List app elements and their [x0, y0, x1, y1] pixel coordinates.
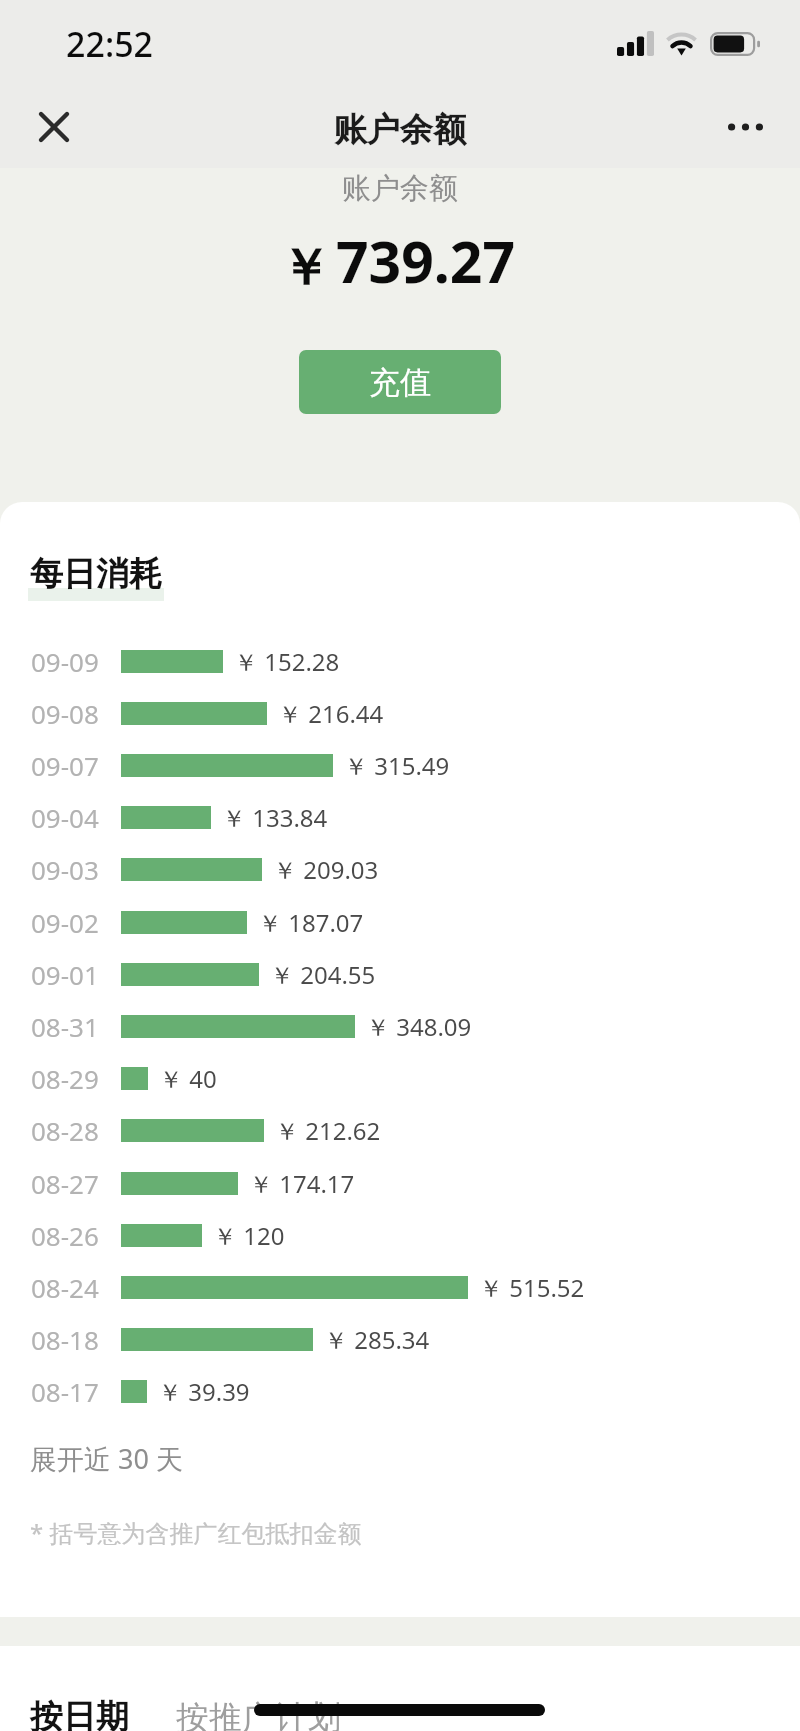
button[interactable]: 09-03	[0, 843, 800, 895]
staticText: 每日消耗	[30, 553, 162, 595]
staticText: ￥ 39.39	[158, 1375, 250, 1408]
staticText: * 括号意为含推广红包抵扣金额	[30, 1516, 362, 1549]
button[interactable]: 08-24	[0, 1261, 800, 1313]
button[interactable]: 09-01	[0, 948, 800, 1000]
button[interactable]: 按日期	[30, 1696, 129, 1731]
button[interactable]: 09-04	[0, 791, 800, 843]
staticText: 08-18	[31, 1322, 121, 1357]
staticText: ￥ 216.44	[278, 697, 384, 730]
staticText: 08-26	[31, 1218, 121, 1253]
button[interactable]: Close	[23, 96, 85, 158]
staticText: ￥ 133.84	[222, 801, 328, 834]
button[interactable]: 09-02	[0, 896, 800, 948]
staticText: 09-04	[31, 800, 121, 835]
staticText: 按推广计划	[176, 1697, 341, 1731]
staticText: 09-07	[31, 748, 121, 783]
staticText: ￥ 120	[213, 1219, 285, 1252]
button[interactable]: 09-08	[0, 687, 800, 739]
staticText: ￥ 285.34	[324, 1323, 430, 1356]
staticText: ￥	[280, 237, 330, 300]
button[interactable]: 08-28	[0, 1104, 800, 1156]
button[interactable]: 08-18	[0, 1313, 800, 1365]
button[interactable]: 充值	[299, 350, 501, 414]
staticText: 739.27	[336, 222, 516, 300]
button[interactable]: 09-09	[0, 635, 800, 687]
button[interactable]: 08-29	[0, 1052, 800, 1104]
staticText: 08-28	[31, 1113, 121, 1148]
staticText: ￥ 174.17	[249, 1167, 355, 1200]
button[interactable]: 按推广计划	[176, 1697, 341, 1731]
staticText: ￥ 204.55	[270, 958, 376, 991]
staticText: 09-09	[31, 644, 121, 679]
staticText: 08-17	[31, 1374, 121, 1409]
button[interactable]: 08-17	[0, 1365, 800, 1417]
staticText: ￥ 515.52	[479, 1271, 585, 1304]
staticText: 09-02	[31, 905, 121, 940]
staticText: ￥ 187.07	[258, 906, 364, 939]
staticText: 22:52	[66, 21, 154, 67]
staticText: 08-27	[31, 1166, 121, 1201]
staticText: ￥ 152.28	[234, 645, 340, 678]
button[interactable]: 展开近 30 天	[30, 1440, 183, 1477]
staticText: 08-24	[31, 1270, 121, 1305]
staticText: 09-01	[31, 957, 121, 992]
staticText: ￥ 348.09	[366, 1010, 472, 1043]
staticText: 账户余额	[334, 109, 466, 151]
staticText: 按日期	[30, 1696, 129, 1731]
staticText: ￥ 40	[159, 1062, 217, 1095]
button[interactable]: 09-07	[0, 739, 800, 791]
staticText: 08-29	[31, 1061, 121, 1096]
staticText: ￥ 315.49	[344, 749, 450, 782]
button[interactable]: 08-31	[0, 1000, 800, 1052]
staticText: 账户余额	[342, 170, 458, 207]
staticText: 展开近 30 天	[30, 1440, 183, 1477]
button[interactable]: More options	[714, 96, 776, 158]
staticText: ￥ 212.62	[275, 1114, 381, 1147]
staticText: 充值	[369, 363, 431, 402]
staticText: ￥ 209.03	[273, 853, 379, 886]
staticText: 09-08	[31, 696, 121, 731]
staticText: 09-03	[31, 852, 121, 887]
button[interactable]: 08-27	[0, 1157, 800, 1209]
staticText: 08-31	[31, 1009, 121, 1044]
button[interactable]: 08-26	[0, 1209, 800, 1261]
